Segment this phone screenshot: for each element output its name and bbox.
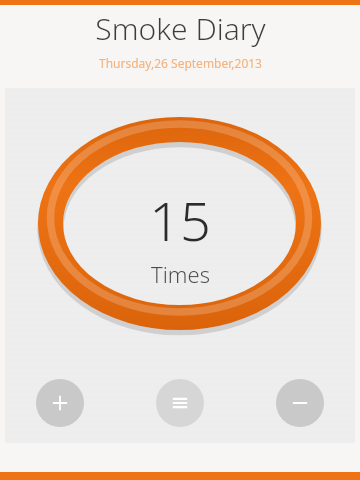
button[interactable]: Subtract [276, 379, 324, 427]
staticText: 15 [149, 183, 211, 257]
staticText: Times [151, 259, 210, 289]
staticText: Smoke Diary [95, 8, 266, 49]
button[interactable]: Add [36, 379, 84, 427]
staticText: Thursday,26 September,2013 [99, 55, 262, 71]
button[interactable]: List [156, 379, 204, 427]
